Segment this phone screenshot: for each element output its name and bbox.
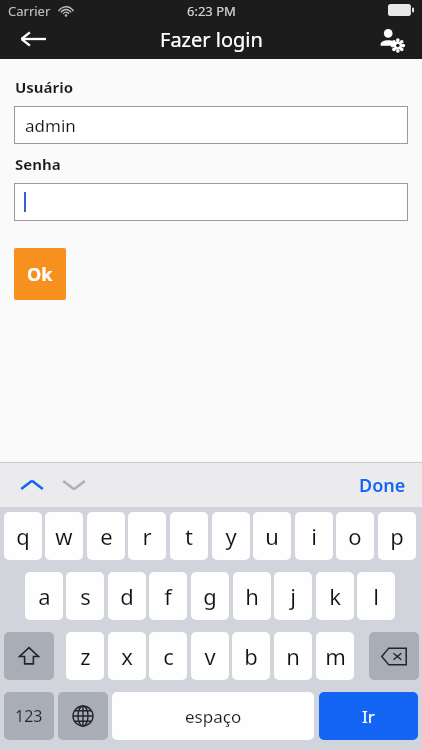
staticText: i [311, 521, 317, 551]
staticText: c [163, 641, 174, 671]
staticText: Carrier [8, 2, 51, 20]
button[interactable]: q [4, 512, 42, 560]
staticText: q [16, 521, 30, 551]
button[interactable]: e [87, 512, 125, 560]
staticText: admin [25, 114, 76, 137]
button[interactable]: Done [351, 463, 414, 507]
button[interactable]: z [66, 632, 104, 680]
button[interactable] [14, 183, 408, 221]
button[interactable]: Account settings [368, 19, 414, 59]
staticText: d [120, 581, 134, 611]
staticText: b [244, 641, 258, 671]
staticText: t [185, 521, 193, 551]
staticText: m [325, 641, 346, 671]
button[interactable]: u [253, 512, 291, 560]
staticText: k [329, 581, 341, 611]
button[interactable]: o [336, 512, 374, 560]
button[interactable]: i [295, 512, 333, 560]
button[interactable]: 123 [4, 692, 54, 740]
staticText: o [348, 521, 362, 551]
button[interactable]: x [108, 632, 146, 680]
staticText: Done [359, 473, 406, 498]
button[interactable]: y [212, 512, 250, 560]
staticText: r [142, 521, 152, 551]
staticText: v [204, 641, 216, 671]
staticText: Fazer login [160, 26, 263, 53]
staticText: u [265, 521, 279, 551]
button[interactable]: j [274, 572, 312, 620]
staticText: g [203, 581, 217, 611]
staticText: z [80, 641, 91, 671]
staticText: n [286, 641, 300, 671]
staticText: s [80, 581, 91, 611]
staticText: e [100, 521, 113, 551]
staticText: p [390, 521, 404, 551]
button[interactable]: v [191, 632, 229, 680]
button[interactable]: a [25, 572, 63, 620]
staticText: espaço [185, 705, 242, 728]
staticText: x [121, 641, 133, 671]
button[interactable]: Backspace [369, 632, 419, 680]
button[interactable]: w [45, 512, 83, 560]
button[interactable]: k [316, 572, 354, 620]
staticText: y [225, 521, 237, 551]
button[interactable]: d [108, 572, 146, 620]
staticText: w [55, 521, 73, 551]
staticText: h [245, 581, 259, 611]
button[interactable]: g [191, 572, 229, 620]
button[interactable]: Previous field [12, 463, 52, 507]
button[interactable]: l [357, 572, 395, 620]
staticText: 6:23 PM [187, 2, 236, 20]
button[interactable]: s [66, 572, 104, 620]
button[interactable]: t [170, 512, 208, 560]
button[interactable]: Ok [14, 248, 66, 300]
staticText: 123 [15, 705, 43, 727]
button[interactable]: Ir [319, 692, 418, 740]
button[interactable]: b [232, 632, 270, 680]
staticText: l [373, 581, 379, 611]
button[interactable]: c [149, 632, 187, 680]
staticText: a [38, 581, 51, 611]
button[interactable]: m [316, 632, 354, 680]
button[interactable]: Next field [54, 463, 94, 507]
button[interactable]: f [149, 572, 187, 620]
staticText: f [164, 581, 172, 611]
staticText: Ok [27, 262, 53, 287]
button[interactable]: Back [10, 19, 56, 59]
button[interactable]: admin [14, 106, 408, 144]
staticText: j [290, 581, 296, 611]
staticText: Senha [15, 154, 61, 174]
button[interactable]: espaço [112, 692, 314, 740]
button[interactable]: Change keyboard language [58, 692, 108, 740]
button[interactable]: r [128, 512, 166, 560]
button[interactable]: h [233, 572, 271, 620]
staticText: Ir [362, 705, 375, 728]
button[interactable]: p [378, 512, 416, 560]
button[interactable]: Shift [4, 632, 54, 680]
staticText: Usuário [15, 77, 74, 97]
button[interactable]: n [274, 632, 312, 680]
